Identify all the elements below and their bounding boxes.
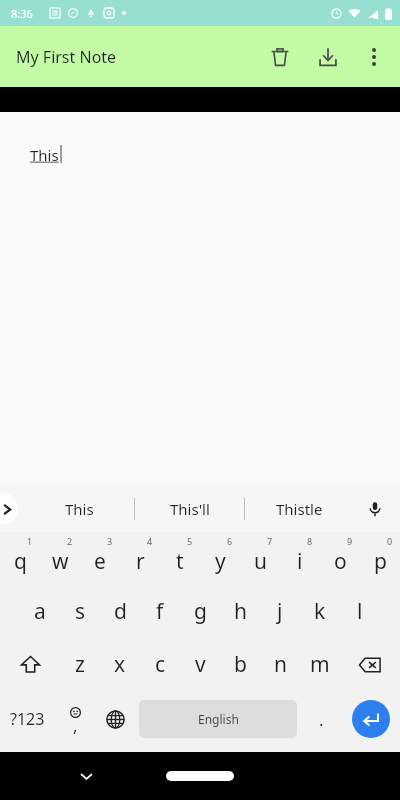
button[interactable]: w	[40, 532, 80, 585]
staticText: 8	[307, 535, 313, 547]
staticText: e	[94, 547, 106, 576]
staticText: r	[136, 547, 145, 576]
staticText: ,	[73, 714, 78, 737]
button[interactable]: Voice input	[360, 494, 390, 524]
staticText: ?123	[10, 708, 45, 730]
button[interactable]: n	[260, 638, 300, 691]
staticText: f	[156, 597, 164, 626]
staticText: u	[254, 547, 267, 576]
staticText: b	[234, 650, 247, 679]
button[interactable]: b	[220, 638, 260, 691]
staticText: My First Note	[16, 46, 256, 68]
staticText: This	[65, 499, 94, 519]
staticText: 9	[347, 535, 353, 547]
button[interactable]: z	[60, 638, 100, 691]
button[interactable]: Backspace	[340, 638, 400, 691]
button[interactable]: t	[160, 532, 200, 585]
button[interactable]: h	[220, 585, 260, 638]
staticText: i	[297, 547, 303, 576]
button[interactable]: Thistle	[245, 487, 354, 531]
button[interactable]: j	[260, 585, 300, 638]
button[interactable]: Emoji and comma	[55, 691, 95, 747]
staticText: This'll	[170, 499, 210, 519]
staticText: 3	[107, 535, 113, 547]
staticText: x	[114, 650, 126, 679]
button[interactable]: More options	[352, 35, 396, 79]
staticText: n	[274, 650, 287, 679]
button[interactable]: d	[100, 585, 140, 638]
staticText: 4	[147, 535, 153, 547]
button[interactable]: g	[180, 585, 220, 638]
staticText: 7	[267, 535, 273, 547]
staticText: v	[195, 650, 206, 679]
staticText: h	[234, 597, 247, 626]
staticText: p	[374, 547, 387, 576]
button[interactable]: c	[140, 638, 180, 691]
staticText: 5	[187, 535, 193, 547]
button[interactable]: a	[20, 585, 60, 638]
button[interactable]: Home	[166, 771, 234, 781]
staticText: y	[215, 547, 226, 576]
staticText: c	[155, 650, 166, 679]
staticText: s	[75, 597, 86, 626]
button[interactable]: p	[360, 532, 400, 585]
staticText: k	[314, 597, 326, 626]
staticText: 0	[387, 535, 393, 547]
button[interactable]: s	[60, 585, 100, 638]
button[interactable]: o	[320, 532, 360, 585]
button[interactable]: y	[200, 532, 240, 585]
staticText: d	[114, 597, 127, 626]
button[interactable]: Hide keyboard	[69, 759, 103, 793]
button[interactable]: v	[180, 638, 220, 691]
button[interactable]: u	[240, 532, 280, 585]
button[interactable]: This'll	[135, 487, 244, 531]
button[interactable]: Save note	[304, 33, 352, 81]
button[interactable]: i	[280, 532, 320, 585]
staticText: This	[30, 145, 59, 165]
button[interactable]: x	[100, 638, 140, 691]
button[interactable]: Change keyboard language	[95, 691, 135, 747]
staticText: .	[319, 708, 324, 731]
button[interactable]: e	[80, 532, 120, 585]
staticText: 2	[67, 535, 73, 547]
button[interactable]: m	[300, 638, 340, 691]
staticText: t	[176, 547, 184, 576]
button[interactable]: English	[139, 700, 297, 738]
button[interactable]: k	[300, 585, 340, 638]
staticText: 8:36	[11, 6, 33, 21]
button[interactable]: This	[24, 487, 134, 531]
staticText: j	[277, 597, 283, 626]
staticText: m	[310, 650, 330, 679]
staticText: l	[357, 597, 363, 626]
button[interactable]: f	[140, 585, 180, 638]
staticText: 6	[227, 535, 233, 547]
button[interactable]: Expand toolbar	[0, 493, 18, 525]
staticText: 1	[27, 535, 33, 547]
staticText: o	[334, 547, 347, 576]
button[interactable]: r	[120, 532, 160, 585]
button[interactable]: q	[0, 532, 40, 585]
button[interactable]: .	[301, 691, 341, 747]
button[interactable]: Delete note	[256, 33, 304, 81]
staticText: q	[14, 547, 27, 576]
button[interactable]: ?123	[0, 691, 55, 747]
staticText: English	[198, 711, 239, 727]
staticText: Thistle	[276, 499, 323, 519]
button[interactable]: l	[340, 585, 380, 638]
button[interactable]: Shift	[0, 638, 60, 691]
staticText: g	[194, 597, 207, 626]
staticText: w	[52, 547, 69, 576]
button[interactable]: Enter	[352, 700, 390, 738]
staticText: a	[34, 597, 46, 626]
staticText: z	[75, 650, 85, 679]
